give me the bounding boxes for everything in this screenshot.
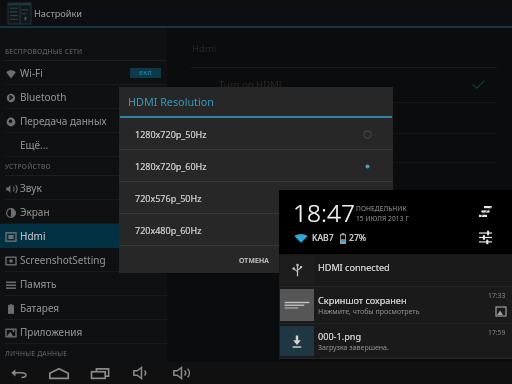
button[interactable]: 000-1.png: [279, 324, 512, 358]
staticText: Bluetooth: [20, 90, 67, 104]
staticText: ПОНЕДЕЛЬНИК: [356, 204, 407, 213]
staticText: 27%: [349, 232, 367, 244]
staticText: Turn on HDMI: [219, 78, 282, 91]
staticText: ScreenshotSetting: [20, 253, 106, 267]
button[interactable]: Скриншот сохранен: [279, 287, 512, 323]
button[interactable]: 720x576p_50Hz: [119, 182, 393, 214]
staticText: Батарея: [20, 301, 60, 315]
staticText: ВКЛ: [139, 69, 152, 77]
button[interactable]: ScreenshotSetting: [0, 248, 167, 272]
staticText: Загрузка завершена.: [318, 343, 389, 353]
staticText: 15 ИЮЛЯ 2013 Г: [356, 214, 409, 223]
button[interactable]: Recent apps: [79, 362, 121, 384]
button[interactable]: Volume down: [121, 362, 161, 384]
staticText: ОТМЕНА: [239, 256, 270, 265]
button[interactable]: Звук: [0, 176, 167, 200]
button[interactable]: ОТМЕНА: [233, 252, 276, 269]
staticText: ВЫКЛ: [136, 93, 155, 101]
staticText: 18:47: [293, 196, 355, 229]
button[interactable]: Home: [38, 362, 79, 384]
button[interactable]: Батарея: [0, 296, 167, 320]
staticText: Звук: [20, 181, 42, 195]
staticText: 1280x720p_60Hz: [135, 160, 207, 172]
staticText: 17:59: [488, 328, 506, 337]
button[interactable]: Экран: [0, 200, 167, 224]
button[interactable]: HDMI connected: [279, 254, 512, 286]
staticText: ЛИЧНЫЕ ДАННЫЕ: [5, 349, 68, 358]
staticText: Приложения: [20, 325, 83, 339]
button[interactable]: Clear all notifications: [477, 205, 493, 217]
staticText: 720x480p_60Hz: [135, 224, 202, 236]
button[interactable]: Память: [0, 272, 167, 296]
staticText: 1280x720p_50Hz: [135, 128, 207, 140]
staticText: УСТРОЙСТВО: [5, 162, 51, 171]
button[interactable]: 720x480p_60Hz: [119, 214, 393, 246]
button[interactable]: Hdmi: [0, 224, 167, 248]
staticText: 17:33: [488, 291, 506, 300]
staticText: Hdmi: [20, 229, 46, 243]
staticText: Hdmi: [192, 42, 217, 55]
button[interactable]: 1280x720p_50Hz: [119, 118, 393, 150]
staticText: Wi-Fi: [20, 66, 43, 80]
staticText: Нажмите, чтобы просмотреть: [318, 307, 420, 317]
staticText: HDMI connected: [318, 261, 390, 273]
staticText: 000-1.png: [318, 330, 361, 342]
button[interactable]: Приложения: [0, 320, 167, 344]
button[interactable]: Volume up: [161, 362, 201, 384]
button[interactable]: 1280x720p_60Hz: [119, 150, 393, 182]
button[interactable]: Wi-Fi: [0, 61, 167, 85]
staticText: Ещё...: [20, 138, 49, 152]
staticText: БЕСПРОВОДНЫЕ СЕТИ: [5, 47, 83, 56]
staticText: HDMI Resolution: [128, 94, 214, 109]
button[interactable]: Turn on HDMI: [167, 68, 512, 101]
staticText: Передача данных: [20, 114, 107, 128]
staticText: Память: [20, 277, 57, 291]
button[interactable]: Передача данных: [0, 109, 167, 133]
button[interactable]: Bluetooth: [0, 85, 167, 109]
staticText: KAB7: [312, 232, 334, 244]
button[interactable]: Quick settings: [478, 230, 492, 244]
staticText: Настройки: [34, 7, 83, 20]
staticText: Экран: [20, 205, 50, 219]
staticText: Скриншот сохранен: [318, 294, 407, 306]
staticText: 720x576p_50Hz: [135, 192, 202, 204]
button[interactable]: Ещё...: [0, 133, 167, 157]
button[interactable]: Back: [0, 362, 38, 384]
